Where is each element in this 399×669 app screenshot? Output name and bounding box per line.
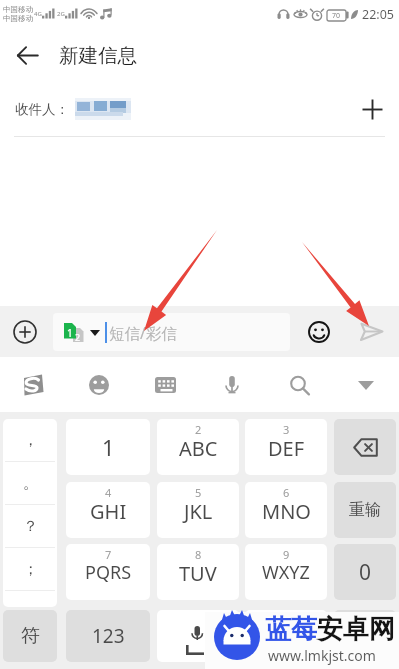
button[interactable]: Enter: [334, 610, 396, 662]
staticText: 9: [283, 547, 290, 562]
staticText: 中国移动: [3, 14, 33, 23]
button[interactable]: 9: [245, 544, 327, 600]
staticText: 4: [105, 485, 112, 500]
staticText: ；: [23, 560, 38, 579]
button[interactable]: Add recipient: [345, 82, 399, 136]
staticText: 1: [67, 326, 73, 340]
button[interactable]: 1: [66, 419, 150, 475]
button[interactable]: ，: [3, 419, 57, 462]
button[interactable]: 7: [66, 544, 150, 600]
staticText: 7: [105, 547, 112, 562]
button[interactable]: 0: [334, 544, 396, 600]
button[interactable]: 。: [3, 462, 57, 505]
staticText: 0: [359, 558, 372, 587]
staticText: 重输: [349, 500, 381, 520]
button[interactable]: 收件人：: [0, 82, 399, 136]
staticText: ，: [23, 431, 38, 450]
staticText: DEF: [268, 435, 305, 462]
staticText: 2: [195, 422, 202, 437]
button[interactable]: Keyboard: [132, 358, 198, 412]
button[interactable]: Back: [0, 28, 54, 82]
staticText: 收件人：: [15, 101, 69, 118]
staticText: PQRS: [85, 560, 132, 585]
button[interactable]: 符: [3, 610, 57, 662]
staticText: MNO: [262, 498, 311, 525]
button[interactable]: Send: [355, 315, 389, 349]
button[interactable]: 1: [53, 313, 290, 351]
staticText: 70: [332, 11, 341, 21]
staticText: 6: [283, 485, 290, 500]
button[interactable]: ？: [3, 505, 57, 548]
staticText: 2G: [57, 10, 65, 18]
button[interactable]: Emoji: [66, 358, 132, 412]
button[interactable]: 2: [157, 419, 239, 475]
button[interactable]: Search: [265, 358, 332, 412]
button[interactable]: 重输: [334, 482, 396, 538]
button[interactable]: Sogou: [0, 358, 66, 412]
staticText: 5: [195, 485, 202, 500]
staticText: GHI: [90, 498, 127, 525]
staticText: 2: [75, 331, 81, 343]
button[interactable]: Backspace: [334, 419, 396, 475]
staticText: WXYZ: [262, 560, 310, 585]
staticText: 1: [102, 432, 115, 462]
staticText: JKL: [184, 498, 213, 525]
staticText: 符: [21, 624, 40, 648]
button[interactable]: 4: [66, 482, 150, 538]
button[interactable]: Space and voice input: [157, 610, 239, 662]
staticText: 。: [23, 474, 38, 493]
staticText: 3: [283, 422, 290, 437]
button[interactable]: ；: [3, 548, 57, 591]
button[interactable]: Collapse: [332, 358, 399, 412]
button[interactable]: 8: [157, 544, 239, 600]
staticText: ABC: [179, 435, 218, 462]
staticText: 中国移动: [3, 5, 33, 14]
staticText: 8: [195, 547, 202, 562]
staticText: 蓝莓: [265, 613, 317, 646]
button[interactable]: 3: [245, 419, 327, 475]
button[interactable]: 123: [66, 610, 150, 662]
staticText: ？: [23, 517, 38, 536]
button[interactable]: Emoji: [301, 314, 337, 350]
staticText: 22:05: [362, 6, 394, 23]
button[interactable]: Add attachment: [0, 307, 50, 357]
staticText: 123: [92, 623, 125, 649]
button[interactable]: 5: [157, 482, 239, 538]
staticText: 安卓网: [317, 613, 395, 646]
button[interactable]: Voice: [198, 358, 265, 412]
staticText: 新建信息: [59, 43, 137, 68]
staticText: www.lmkjst.com: [268, 646, 376, 665]
button[interactable]: 6: [245, 482, 327, 538]
button[interactable]: Space: [245, 610, 327, 662]
staticText: 短信/彩信: [109, 322, 177, 343]
staticText: TUV: [179, 560, 217, 587]
staticText: 4G: [34, 10, 42, 18]
